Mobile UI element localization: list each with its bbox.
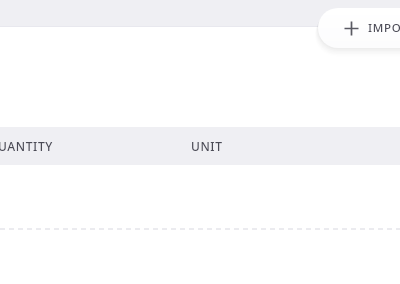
staticText: QUANTITY	[0, 138, 53, 154]
staticText: IMPORT	[368, 20, 400, 36]
button[interactable]: QUANTITY	[0, 127, 191, 165]
button[interactable]: Import	[318, 8, 400, 48]
staticText: UNIT	[191, 138, 223, 154]
button[interactable]: UNIT	[191, 127, 400, 165]
